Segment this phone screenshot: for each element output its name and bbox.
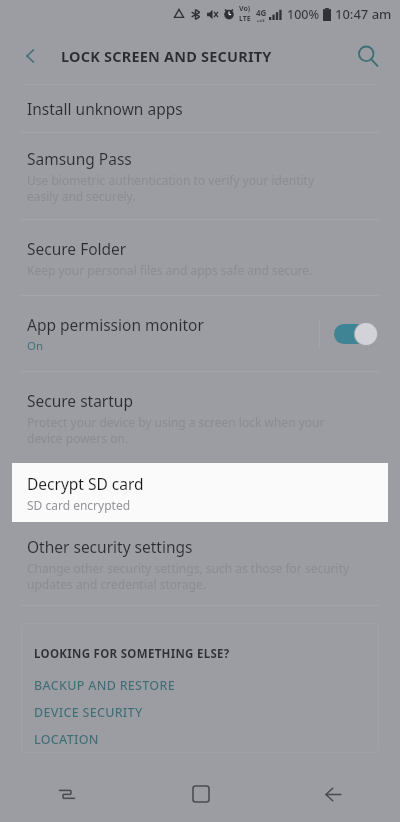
button[interactable]: Search: [346, 34, 390, 78]
staticText: App permission monitor: [27, 314, 204, 335]
staticText: Protect your device by using a screen lo…: [27, 414, 325, 446]
button[interactable]: Back: [267, 766, 400, 822]
button[interactable]: App permission monitor: [0, 296, 400, 371]
staticText: Secure startup: [27, 390, 133, 411]
button[interactable]: Recent apps: [0, 766, 134, 822]
staticText: Change other security settings, such as …: [27, 560, 350, 592]
staticText: Vo): [239, 4, 251, 14]
staticText: Secure Folder: [27, 238, 127, 259]
staticText: LOCK SCREEN AND SECURITY: [61, 46, 272, 66]
button[interactable]: Install unknown apps: [0, 85, 400, 132]
staticText: 100%: [287, 6, 320, 23]
button[interactable]: Decrypt SD card: [12, 463, 388, 522]
staticText: DEVICE SECURITY: [34, 704, 143, 721]
button[interactable]: DEVICE SECURITY: [34, 702, 143, 723]
staticText: On: [27, 338, 44, 354]
button[interactable]: Samsung Pass: [0, 133, 400, 219]
button[interactable]: BACKUP AND RESTORE: [34, 675, 175, 696]
button[interactable]: Back: [10, 35, 52, 77]
staticText: SD card encrypted: [27, 497, 131, 513]
staticText: 4G: [256, 7, 267, 18]
staticText: Install unknown apps: [27, 98, 183, 119]
staticText: LOOKING FOR SOMETHING ELSE?: [34, 646, 230, 662]
button[interactable]: LOCATION: [34, 729, 99, 750]
button[interactable]: Other security settings: [0, 522, 400, 605]
button[interactable]: Secure Folder: [0, 220, 400, 295]
staticText: LTE: [239, 14, 251, 24]
staticText: Other security settings: [27, 536, 193, 557]
staticText: Use biometric authentication to verify y…: [27, 172, 315, 204]
button[interactable]: App permission monitor toggle: [334, 322, 378, 346]
staticText: 10:47 am: [335, 5, 392, 23]
staticText: Decrypt SD card: [27, 473, 144, 494]
staticText: BACKUP AND RESTORE: [34, 677, 175, 694]
button[interactable]: Home: [134, 766, 267, 822]
staticText: Keep your personal files and apps safe a…: [27, 262, 313, 278]
staticText: LOCATION: [34, 731, 99, 748]
staticText: Samsung Pass: [27, 148, 132, 169]
button[interactable]: Secure startup: [0, 372, 400, 463]
